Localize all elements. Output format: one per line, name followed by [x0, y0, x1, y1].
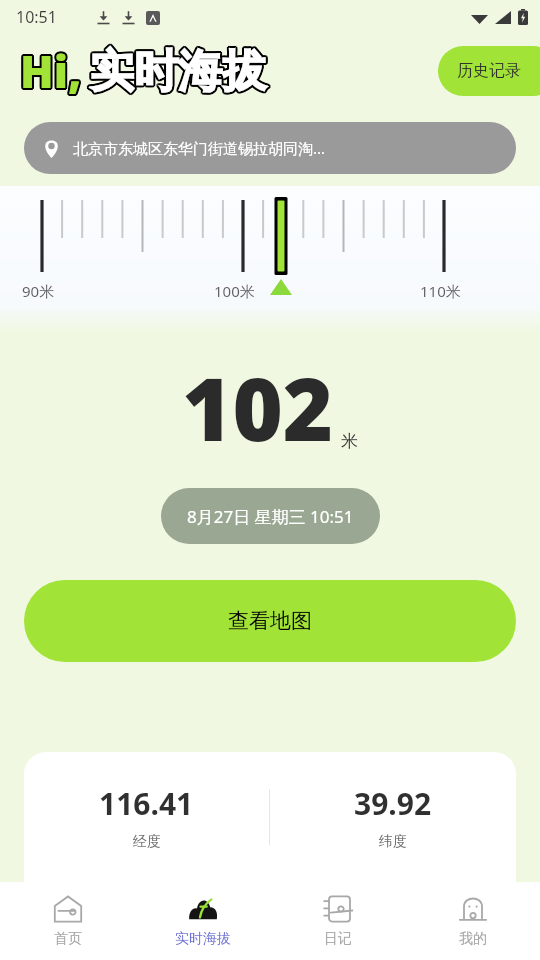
staticText: 实时海拔: [90, 46, 266, 101]
staticText: 实时海拔: [90, 44, 266, 99]
staticText: 历史记录: [457, 61, 521, 81]
staticText: 实时海拔: [90, 43, 266, 98]
staticText: 实时海拔: [175, 930, 231, 948]
button[interactable]: 查看地图: [24, 580, 516, 662]
staticText: Hi,: [20, 39, 82, 99]
button[interactable]: 实时海拔: [135, 882, 270, 960]
staticText: Hi,: [22, 42, 84, 102]
other: 实时海拔: [188, 894, 218, 924]
staticText: 实时海拔: [88, 43, 264, 98]
staticText: 实时海拔: [91, 43, 267, 98]
staticText: 10:51: [16, 6, 57, 28]
staticText: Hi,: [18, 42, 80, 102]
staticText: Hi,: [21, 40, 83, 100]
staticText: 100米: [214, 281, 255, 301]
staticText: Hi,: [22, 40, 84, 100]
button[interactable]: 我的: [405, 882, 540, 960]
staticText: Hi,: [19, 42, 81, 102]
staticText: 日记: [324, 930, 352, 948]
staticText: 39.92: [354, 783, 432, 824]
button[interactable]: 首页: [0, 882, 135, 960]
staticText: Hi,: [21, 41, 83, 101]
staticText: Hi,: [21, 43, 83, 103]
staticText: 实时海拔: [89, 43, 265, 98]
staticText: 实时海拔: [90, 42, 266, 97]
button[interactable]: 116.41: [24, 783, 269, 851]
staticText: 实时海拔: [91, 44, 267, 99]
button[interactable]: 日记: [270, 882, 405, 960]
staticText: 8月27日 星期三 10:51: [187, 505, 354, 528]
staticText: Hi,: [18, 40, 80, 100]
staticText: 实时海拔: [89, 44, 265, 99]
staticText: 纬度: [379, 833, 407, 851]
staticText: Hi,: [20, 43, 82, 103]
staticText: Hi,: [19, 39, 81, 99]
staticText: 实时海拔: [90, 45, 266, 100]
staticText: Hi,: [20, 40, 82, 100]
staticText: 实时海拔: [89, 45, 265, 100]
staticText: 实时海拔: [91, 42, 267, 97]
staticText: 实时海拔: [92, 43, 268, 98]
staticText: Hi,: [22, 41, 84, 101]
staticText: 116.41: [99, 783, 194, 824]
button[interactable]: 北京市东城区东华门街道锡拉胡同淘...: [24, 122, 516, 174]
staticText: Hi,: [18, 41, 80, 101]
staticText: 我的: [459, 930, 487, 948]
staticText: 实时海拔: [91, 46, 267, 101]
staticText: 查看地图: [228, 608, 312, 634]
staticText: 90米: [22, 281, 55, 301]
staticText: 102: [182, 349, 334, 466]
staticText: 首页: [54, 930, 82, 948]
staticText: 实时海拔: [92, 44, 268, 99]
button[interactable]: 8月27日 星期三 10:51: [161, 488, 380, 544]
staticText: Hi,: [19, 41, 81, 101]
staticText: Hi,: [21, 39, 83, 99]
staticText: 实时海拔: [88, 45, 264, 100]
staticText: 实时海拔: [89, 46, 265, 101]
staticText: 经度: [133, 833, 161, 851]
staticText: Hi,: [20, 42, 82, 102]
staticText: Hi,: [19, 43, 81, 103]
staticText: Hi,: [21, 42, 83, 102]
staticText: 实时海拔: [92, 45, 268, 100]
staticText: 实时海拔: [88, 44, 264, 99]
staticText: 110米: [420, 281, 461, 301]
staticText: 实时海拔: [89, 42, 265, 97]
staticText: 北京市东城区东华门街道锡拉胡同淘...: [73, 138, 326, 158]
staticText: 实时海拔: [91, 45, 267, 100]
staticText: Hi,: [19, 40, 81, 100]
staticText: 米: [341, 431, 358, 452]
button[interactable]: 39.92: [270, 783, 516, 851]
button[interactable]: 历史记录: [438, 46, 540, 96]
staticText: Hi,: [20, 41, 82, 101]
